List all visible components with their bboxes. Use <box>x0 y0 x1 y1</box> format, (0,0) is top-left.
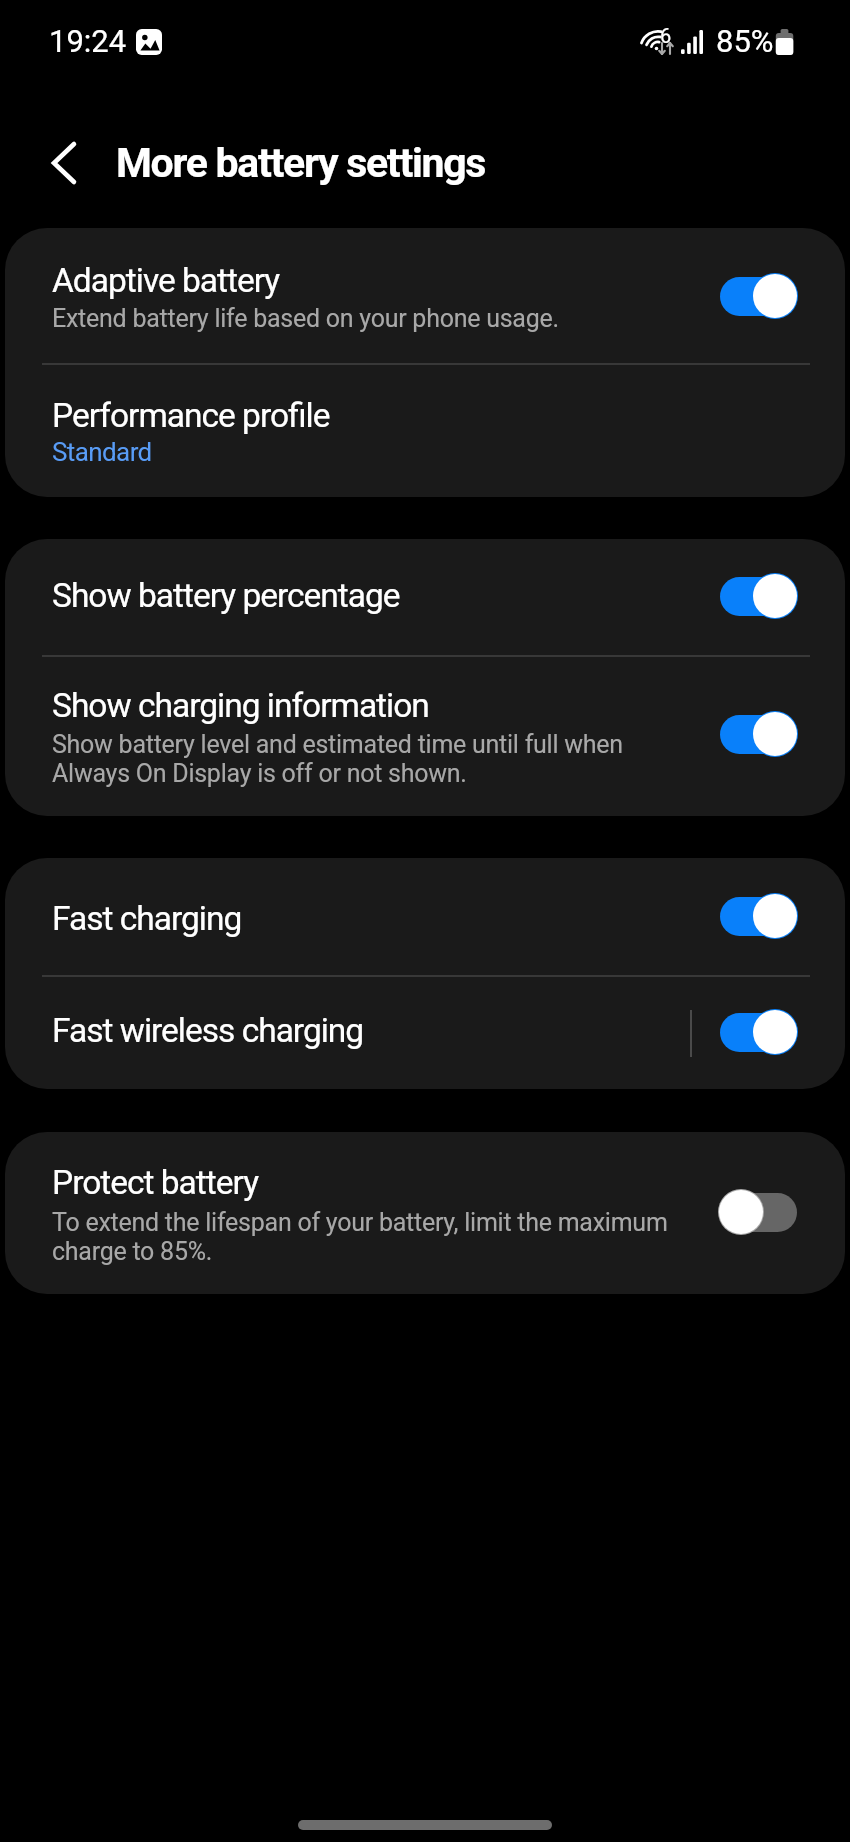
button[interactable]: Show battery percentage <box>5 539 845 655</box>
staticText: Adaptive battery <box>52 261 280 300</box>
button[interactable]: Show charging information <box>5 657 845 816</box>
button[interactable]: Fast wireless charging <box>5 977 845 1089</box>
staticText: Show battery level and estimated time un… <box>52 730 623 788</box>
button[interactable]: Off <box>705 1179 811 1245</box>
button[interactable]: On <box>705 701 811 767</box>
staticText: Fast charging <box>52 899 242 938</box>
button[interactable]: On <box>705 563 811 629</box>
staticText: Protect battery <box>52 1163 259 1202</box>
staticText: Fast wireless charging <box>52 1011 364 1050</box>
staticText: 85% <box>716 23 774 59</box>
button[interactable]: On <box>705 999 811 1065</box>
staticText: More battery settings <box>116 139 486 187</box>
staticText: Standard <box>52 437 152 467</box>
button[interactable]: On <box>705 883 811 949</box>
staticText: 19:24 <box>49 23 127 59</box>
button[interactable]: Performance profile <box>5 365 845 497</box>
staticText: To extend the lifespan of your battery, … <box>52 1208 668 1266</box>
staticText: Performance profile <box>52 396 330 435</box>
button[interactable]: Protect battery <box>5 1132 845 1294</box>
staticText: Show battery percentage <box>52 576 400 615</box>
button[interactable]: On <box>705 263 811 329</box>
staticText: Extend battery life based on your phone … <box>52 304 559 333</box>
button[interactable]: Fast charging <box>5 858 845 975</box>
staticText: 6 <box>660 24 672 47</box>
button[interactable]: Navigate up <box>32 131 96 195</box>
staticText: Show charging information <box>52 686 429 725</box>
button[interactable]: Adaptive battery <box>5 228 845 363</box>
